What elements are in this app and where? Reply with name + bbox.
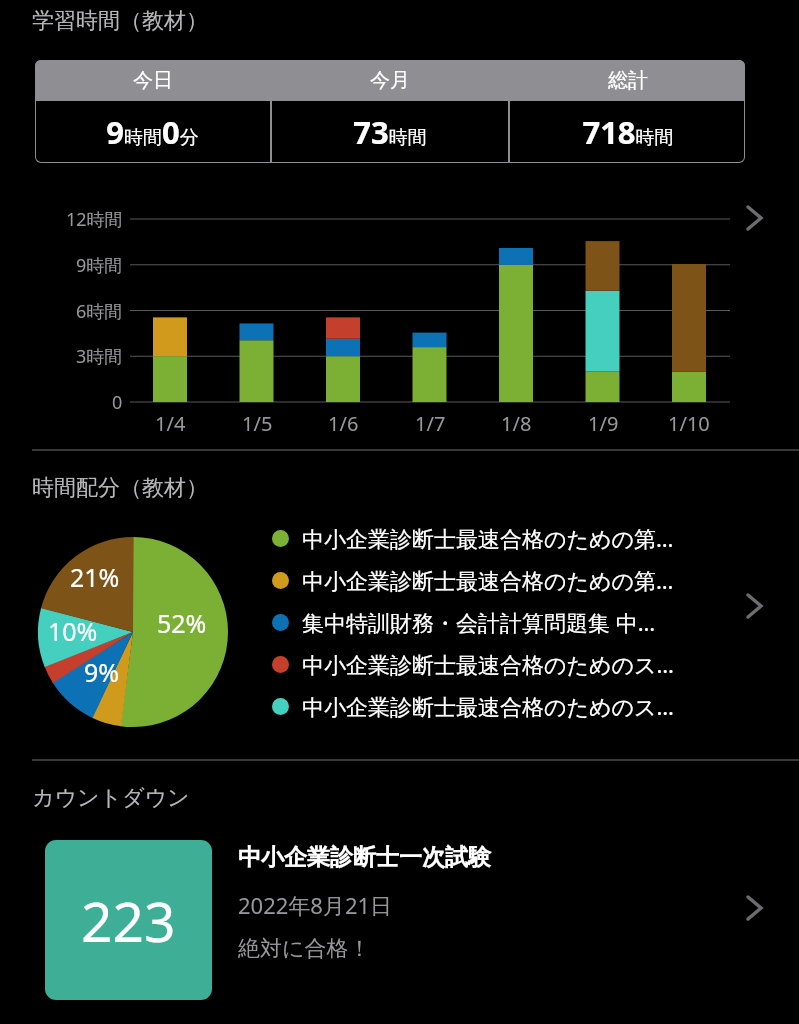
staticText: 中小企業診断士最速合格のためのス… (302, 691, 674, 721)
staticText: 1/8 (501, 410, 532, 437)
staticText: 2022年8月21日 (238, 890, 393, 920)
staticText: 学習時間（教材） (32, 7, 208, 35)
staticText: 1/5 (242, 410, 273, 437)
staticText: 10% (48, 614, 98, 648)
button[interactable]: 中小企業診断士最速合格のためのス… (272, 646, 727, 682)
button[interactable]: 223 (0, 838, 799, 1010)
staticText: 絶対に合格！ (238, 935, 371, 963)
staticText: 21% (70, 560, 120, 594)
staticText: 1/7 (415, 410, 446, 437)
staticText: 0 (112, 390, 123, 415)
staticText: 時間配分（教材） (32, 474, 208, 502)
staticText: 1/4 (155, 410, 186, 437)
staticText: 集中特訓財務・会計計算問題集 中… (302, 607, 656, 637)
staticText: 1/9 (588, 410, 619, 437)
staticText: 3時間 (76, 344, 123, 369)
staticText: 中小企業診断士最速合格のためのス… (302, 649, 674, 679)
staticText: 52% (157, 606, 207, 640)
staticText: 中小企業診断士最速合格のための第… (302, 523, 674, 553)
button[interactable]: 集中特訓財務・会計計算問題集 中… (272, 604, 727, 640)
staticText: 総計 (608, 68, 648, 93)
staticText: 718時間 (582, 111, 674, 153)
staticText: 9時間 (76, 253, 123, 278)
staticText: 今日 (133, 68, 173, 93)
staticText: 6時間 (76, 299, 123, 324)
button[interactable]: 今日 (35, 60, 745, 163)
staticText: 中小企業診断士最速合格のための第… (302, 565, 674, 595)
staticText: 73時間 (353, 111, 427, 153)
staticText: カウントダウン (32, 784, 190, 812)
button[interactable]: 学習時間グラフを開く (0, 180, 799, 442)
staticText: 1/6 (328, 410, 359, 437)
staticText: 今月 (370, 68, 410, 93)
staticText: 中小企業診断士一次試験 (238, 843, 491, 872)
staticText: 12時間 (66, 207, 123, 232)
button[interactable]: 中小企業診断士最速合格のための第… (272, 562, 727, 598)
staticText: 223 (81, 883, 176, 958)
button[interactable]: 中小企業診断士最速合格のためのス… (272, 688, 727, 724)
staticText: 1/10 (668, 410, 710, 437)
staticText: 9% (84, 655, 120, 689)
button[interactable]: 中小企業診断士最速合格のための第… (272, 520, 727, 556)
staticText: 9時間0分 (106, 111, 199, 153)
